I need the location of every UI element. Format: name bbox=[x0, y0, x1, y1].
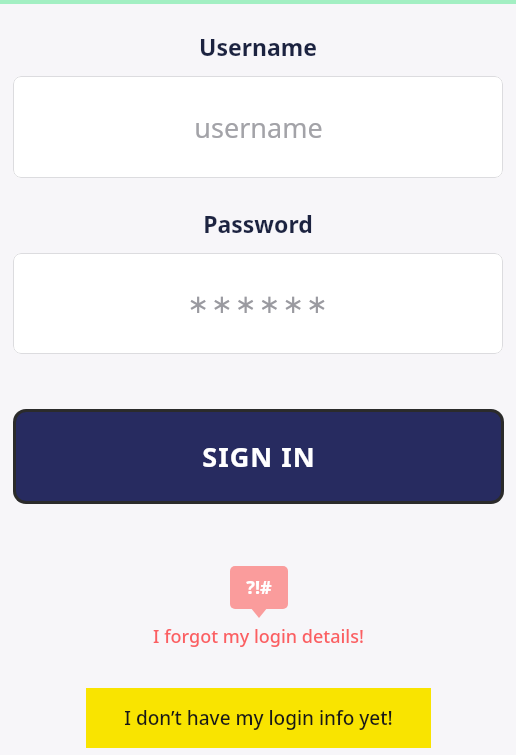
button[interactable]: SIGN IN bbox=[16, 412, 501, 501]
other: Help bbox=[230, 566, 288, 618]
staticText: username bbox=[194, 109, 323, 146]
button[interactable]: Help bbox=[153, 566, 364, 643]
staticText: SIGN IN bbox=[202, 438, 316, 475]
button[interactable]: I don’t have my login info yet! bbox=[86, 688, 431, 748]
staticText: ?!# bbox=[246, 575, 272, 600]
staticText: Password bbox=[203, 208, 313, 239]
staticText: I don’t have my login info yet! bbox=[124, 705, 393, 731]
button[interactable]: username bbox=[13, 76, 503, 178]
staticText: ∗∗∗∗∗∗ bbox=[187, 289, 330, 319]
button[interactable]: ∗∗∗∗∗∗ bbox=[13, 253, 503, 354]
staticText: I forgot my login details! bbox=[153, 624, 364, 649]
staticText: Username bbox=[199, 31, 317, 62]
